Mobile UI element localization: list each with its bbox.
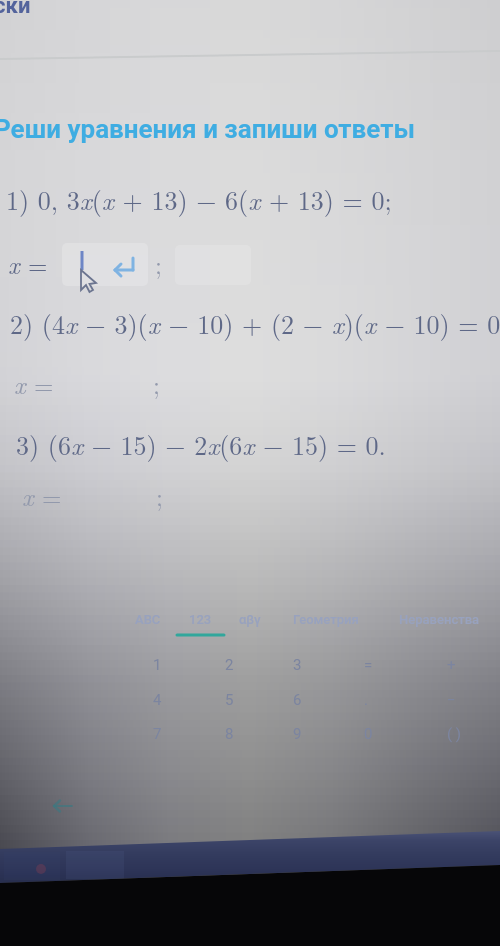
button[interactable]: 0 [364, 725, 373, 743]
button[interactable]: 4 [153, 691, 162, 709]
staticText: ; [155, 246, 162, 281]
button[interactable]: ABC [135, 612, 161, 627]
button[interactable]: 9 [293, 725, 302, 743]
button[interactable]: 123 [189, 612, 212, 627]
button[interactable]: = [364, 656, 373, 674]
button[interactable]: 5 [225, 691, 234, 709]
staticText: ски [0, 0, 31, 19]
staticText: ; [156, 478, 163, 513]
staticText: x = [22, 478, 62, 513]
staticText: x = [8, 246, 48, 281]
button[interactable]: Back [48, 793, 78, 819]
button[interactable]: 1 [153, 656, 162, 674]
button[interactable]: 7 [153, 725, 162, 743]
staticText: 3) (6x − 15) − 2x(6x − 15) = 0. [16, 426, 386, 463]
button[interactable]: Enter [108, 252, 140, 278]
button[interactable]: + [447, 656, 456, 674]
button[interactable]: 3 [293, 656, 302, 674]
staticText: x = [14, 366, 54, 401]
button[interactable]: 6 [293, 691, 302, 709]
button[interactable]: αβγ [239, 612, 261, 627]
button[interactable]: ( ) [447, 725, 462, 743]
staticText: 2) (4x − 3)(x − 10) + (2 − x)(x − 10) = … [10, 305, 500, 342]
staticText: 1) 0, 3x(x + 13) − 6(x + 13) = 0; [6, 181, 392, 218]
button[interactable]: Геометрия [293, 612, 359, 627]
button[interactable]: 2 [225, 656, 234, 674]
staticText: ; [153, 366, 160, 401]
button[interactable]: Неравенства [399, 612, 480, 627]
staticText: Реши уравнения и запиши ответы [0, 114, 415, 144]
button[interactable]: − [447, 691, 456, 709]
button[interactable] [62, 243, 148, 286]
button[interactable]: 8 [225, 725, 234, 743]
